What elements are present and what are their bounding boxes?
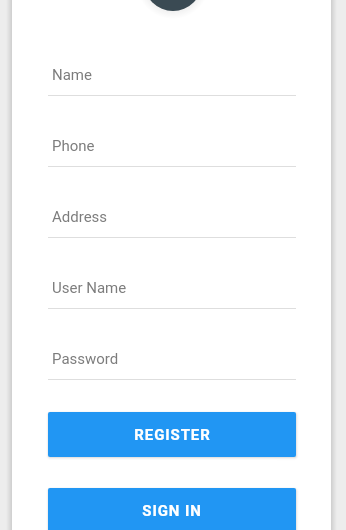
button[interactable]: Phone <box>48 137 296 167</box>
button[interactable]: Password <box>48 350 296 380</box>
staticText: Address <box>52 208 108 226</box>
button[interactable]: Address <box>48 208 296 238</box>
staticText: Password <box>52 350 119 368</box>
staticText: SIGN IN <box>142 502 202 520</box>
button[interactable]: Name <box>48 66 296 96</box>
other: Profile photo <box>144 0 202 11</box>
button[interactable]: SIGN IN <box>48 488 296 530</box>
button[interactable]: User Name <box>48 279 296 309</box>
button[interactable]: REGISTER <box>48 412 296 457</box>
staticText: User Name <box>52 279 127 297</box>
staticText: Name <box>52 66 92 84</box>
staticText: REGISTER <box>134 426 211 444</box>
staticText: Phone <box>52 137 95 155</box>
